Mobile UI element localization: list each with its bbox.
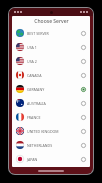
staticText: USA 1 — [27, 45, 81, 50]
button[interactable]: CANADA — [12, 68, 90, 82]
button[interactable]: UNITED KINGDOM — [12, 124, 90, 138]
button[interactable]: GERMANY — [12, 82, 90, 96]
staticText: AUSTRALIA — [27, 101, 81, 106]
staticText: CANADA — [27, 73, 81, 78]
button[interactable]: JAPAN — [12, 152, 90, 166]
staticText: NETHERLANDS — [27, 143, 81, 148]
button[interactable]: NETHERLANDS — [12, 138, 90, 152]
staticText: JAPAN — [27, 157, 81, 162]
button[interactable]: USA 2 — [12, 54, 90, 68]
button[interactable]: USA 1 — [12, 40, 90, 54]
staticText: BEST SERVER — [27, 31, 81, 36]
button[interactable]: AUSTRALIA — [12, 96, 90, 110]
button[interactable]: BEST SERVER — [12, 26, 90, 40]
staticText: USA 2 — [27, 59, 81, 64]
staticText: Choose Server — [34, 18, 69, 25]
staticText: UNITED KINGDOM — [27, 129, 81, 134]
staticText: FRANCE — [27, 115, 81, 120]
button[interactable]: FRANCE — [12, 110, 90, 124]
staticText: GERMANY — [27, 87, 81, 92]
